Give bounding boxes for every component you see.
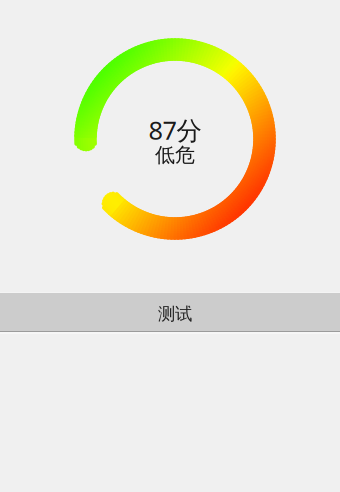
staticText: 87分: [148, 113, 201, 147]
staticText: 低危: [155, 143, 195, 167]
staticText: 测试: [158, 303, 192, 325]
button[interactable]: 测试: [0, 292, 340, 332]
